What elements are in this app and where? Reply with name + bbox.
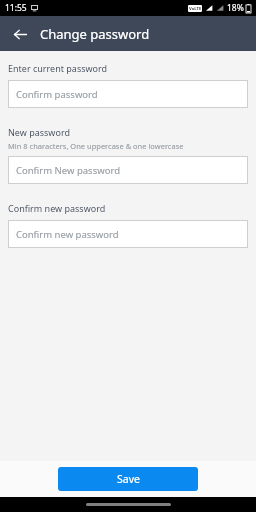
staticText: Confirm New password	[16, 164, 121, 177]
staticText: Enter current password	[8, 62, 108, 74]
staticText: Confirm new password	[16, 228, 119, 241]
staticText: Change password	[40, 25, 150, 43]
button[interactable]: Confirm password	[8, 80, 248, 108]
staticText: Confirm password	[16, 88, 98, 101]
staticText: 11:55	[5, 2, 27, 14]
button[interactable]: Confirm New password	[8, 156, 248, 184]
button[interactable]: Save	[58, 467, 198, 491]
staticText: Save	[117, 472, 140, 486]
button[interactable]: Back	[8, 22, 32, 46]
staticText: Min 8 characters, One uppercase & one lo…	[8, 141, 184, 151]
staticText: VoLTE	[189, 6, 202, 12]
staticText: Confirm new password	[8, 202, 106, 214]
staticText: New password	[8, 126, 70, 138]
button[interactable]: Confirm new password	[8, 220, 248, 248]
staticText: 18%	[227, 2, 244, 14]
